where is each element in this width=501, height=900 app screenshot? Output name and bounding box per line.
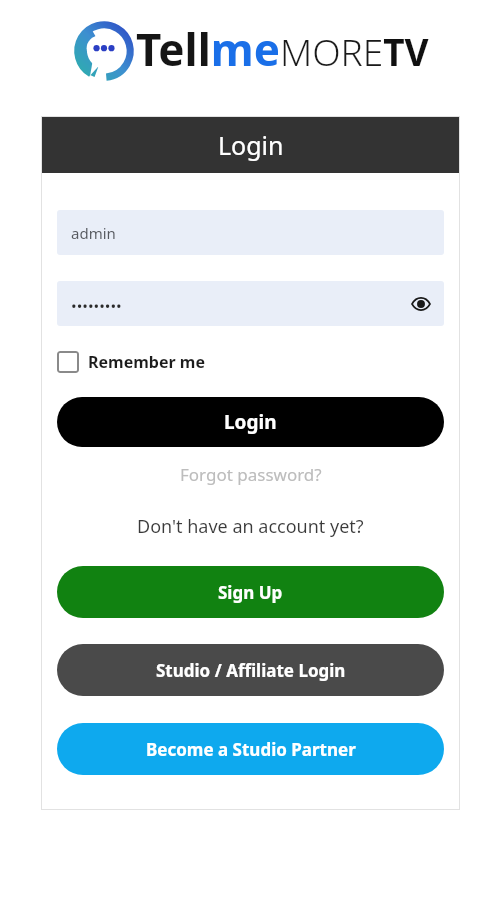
button[interactable]: admin: [57, 210, 444, 255]
staticText: Studio / Affiliate Login: [156, 659, 346, 682]
button[interactable]: Login: [57, 397, 444, 447]
button[interactable]: Studio / Affiliate Login: [57, 644, 444, 696]
button[interactable]: Forgot password?: [57, 463, 444, 486]
staticText: Don't have an account yet?: [137, 514, 364, 539]
button[interactable]: Show password: [408, 291, 434, 317]
button[interactable]: •••••••••: [57, 281, 444, 326]
staticText: Sign Up: [218, 581, 283, 604]
button[interactable]: Sign Up: [57, 566, 444, 618]
staticText: •••••••••: [71, 296, 122, 316]
staticText: Login: [224, 409, 277, 435]
button[interactable]: Become a Studio Partner: [57, 723, 444, 775]
staticText: admin: [71, 223, 116, 243]
staticText: Remember me: [88, 351, 205, 373]
staticText: Forgot password?: [180, 463, 322, 486]
button[interactable]: Remember me: [57, 351, 205, 373]
staticText: TellmeMORETV: [136, 19, 429, 79]
staticText: Become a Studio Partner: [146, 738, 356, 761]
staticText: Login: [218, 128, 284, 162]
